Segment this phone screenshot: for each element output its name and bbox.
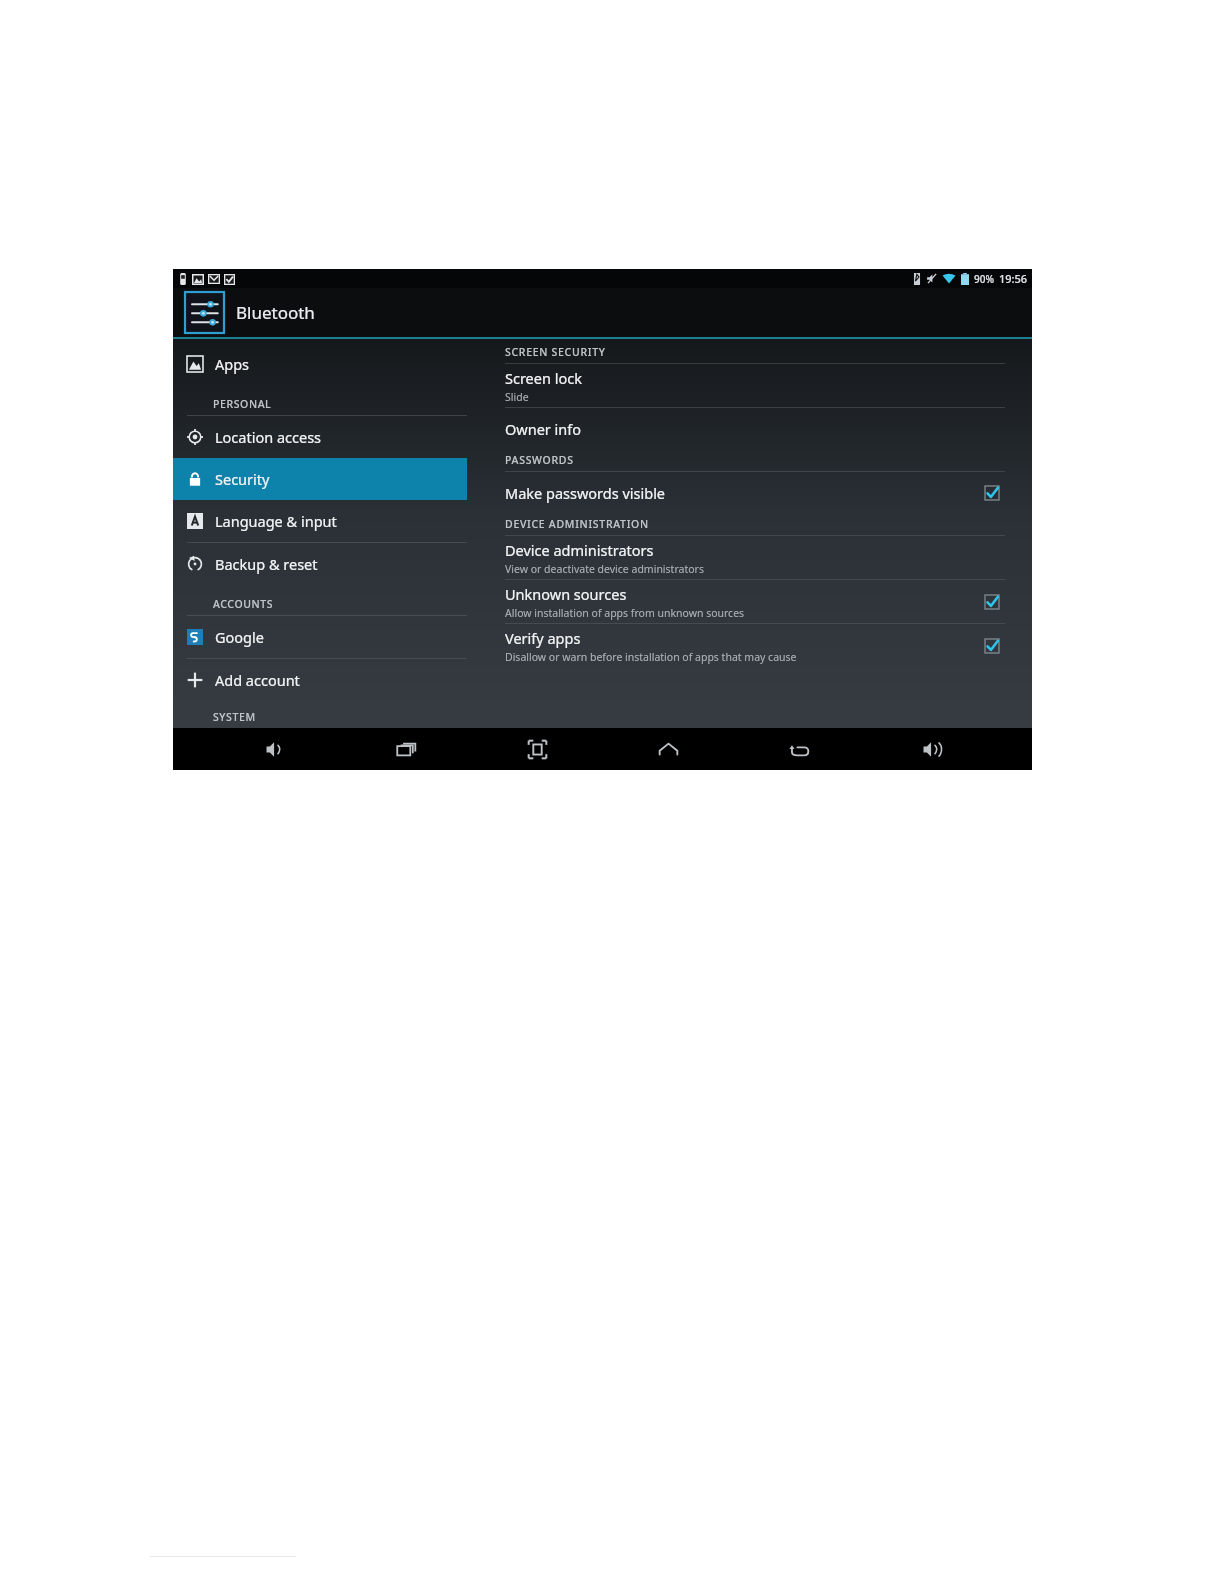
button[interactable]: Language & input: [173, 500, 467, 542]
staticText: Add account: [215, 670, 300, 690]
button[interactable]: Volume up: [901, 728, 961, 770]
button[interactable]: Add account: [173, 659, 467, 701]
staticText: PASSWORDS: [505, 453, 574, 467]
staticText: SCREEN SECURITY: [505, 345, 606, 359]
staticText: 19:56: [999, 271, 1028, 286]
staticText: PERSONAL: [213, 397, 272, 411]
button[interactable]: Screenshot: [507, 728, 567, 770]
button[interactable]: Unknown sources: [505, 580, 1005, 623]
button[interactable]: Screen lock: [505, 364, 1005, 407]
staticText: Verify apps: [505, 628, 581, 648]
staticText: Make passwords visible: [505, 483, 666, 503]
staticText: Slide: [505, 390, 529, 404]
button[interactable]: Toggle Verify apps: [979, 633, 1005, 659]
staticText: Security: [215, 469, 270, 489]
button[interactable]: Owner info: [505, 408, 1005, 449]
staticText: Allow installation of apps from unknown …: [505, 606, 745, 620]
button[interactable]: Home: [638, 728, 698, 770]
button[interactable]: Location access: [173, 416, 467, 458]
staticText: 90%: [974, 272, 994, 286]
staticText: ACCOUNTS: [213, 597, 274, 611]
button[interactable]: Volume down: [244, 728, 304, 770]
button[interactable]: Device administrators: [505, 536, 1005, 579]
button[interactable]: Back: [769, 728, 829, 770]
button[interactable]: Toggle Make passwords visible: [979, 480, 1005, 506]
staticText: Owner info: [505, 419, 582, 439]
button[interactable]: Toggle Unknown sources: [979, 589, 1005, 615]
button[interactable]: Settings home: [185, 292, 224, 333]
button[interactable]: Security: [173, 458, 467, 500]
button[interactable]: Backup & reset: [173, 543, 467, 585]
staticText: Backup & reset: [215, 554, 318, 574]
staticText: Google: [215, 627, 264, 647]
staticText: DEVICE ADMINISTRATION: [505, 517, 649, 531]
button[interactable]: Recent apps: [376, 728, 436, 770]
staticText: Location access: [215, 427, 322, 447]
staticText: Disallow or warn before installation of …: [505, 650, 797, 664]
button[interactable]: Make passwords visible: [505, 472, 1005, 513]
staticText: Bluetooth: [236, 301, 315, 324]
staticText: Screen lock: [505, 368, 582, 388]
button[interactable]: Google: [173, 616, 467, 658]
staticText: View or deactivate device administrators: [505, 562, 704, 576]
staticText: SYSTEM: [213, 710, 256, 724]
button[interactable]: Apps: [173, 343, 467, 385]
staticText: Language & input: [215, 511, 337, 531]
staticText: Unknown sources: [505, 584, 627, 604]
staticText: Device administrators: [505, 540, 654, 560]
staticText: Apps: [215, 354, 250, 374]
button[interactable]: Verify apps: [505, 624, 1005, 667]
